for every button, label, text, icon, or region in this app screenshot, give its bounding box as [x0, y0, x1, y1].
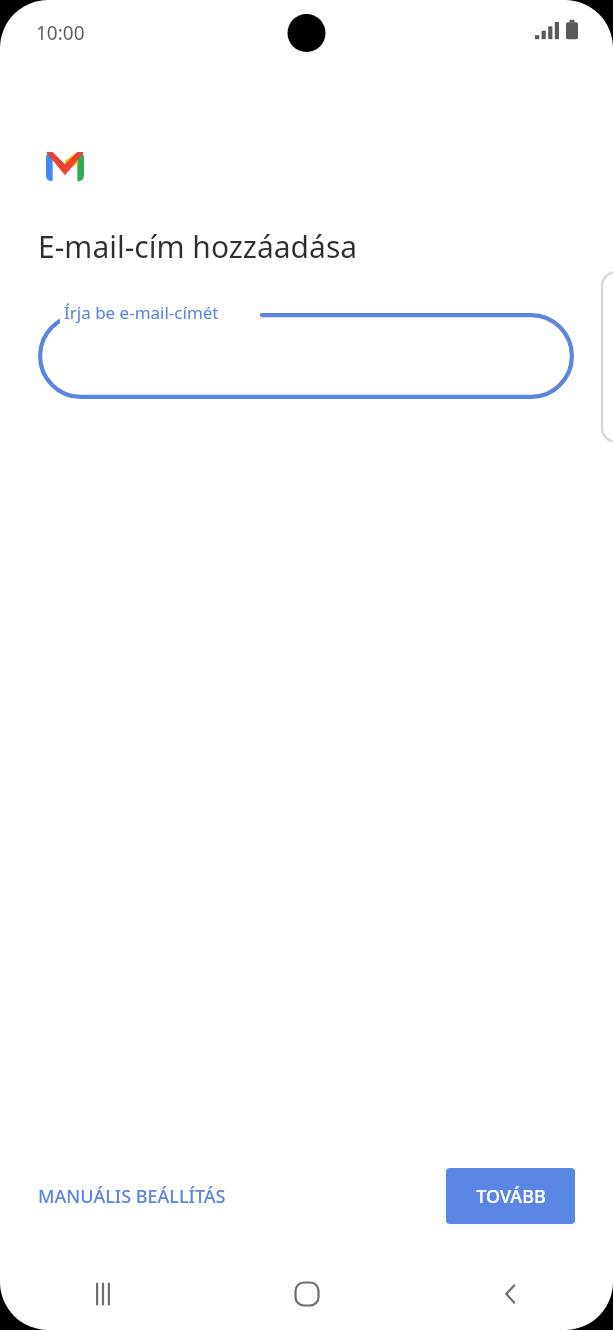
staticText: Írja be e-mail-címét [64, 301, 219, 324]
staticText: E-mail-cím hozzáadása [38, 226, 358, 267]
staticText: 10:00 [36, 20, 85, 46]
staticText: TOVÁBB [476, 1184, 546, 1209]
button[interactable]: Home [205, 1258, 409, 1330]
staticText: MANUÁLIS BEÁLLÍTÁS [38, 1184, 226, 1209]
button[interactable]: TOVÁBB [446, 1168, 575, 1224]
button[interactable]: Recent apps [0, 1258, 205, 1330]
button[interactable]: Back [409, 1258, 613, 1330]
button[interactable] [38, 313, 574, 399]
button[interactable]: MANUÁLIS BEÁLLÍTÁS [26, 1174, 238, 1219]
